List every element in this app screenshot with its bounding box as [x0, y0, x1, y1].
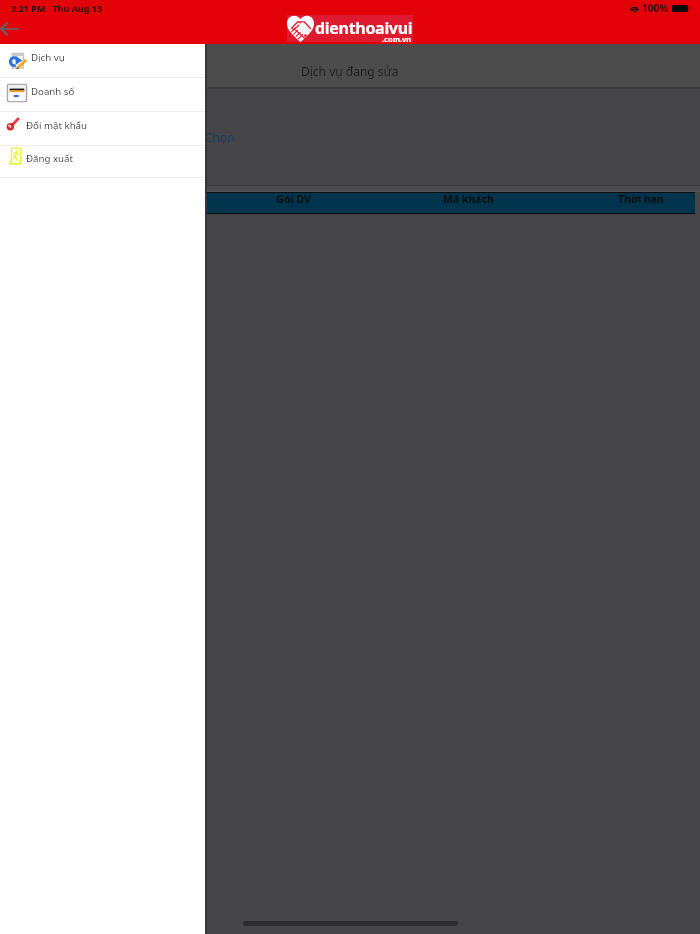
button[interactable]: Đổi mật khẩu — [0, 112, 205, 145]
staticText: Mã khách — [443, 192, 494, 206]
staticText: .com.vn — [382, 34, 412, 44]
staticText: Gói DV — [276, 192, 311, 206]
staticText: Đăng xuất — [26, 152, 74, 165]
staticText: 100% — [642, 1, 669, 15]
button[interactable]: Back — [0, 21, 19, 37]
staticText: Dịch vụ — [31, 51, 65, 64]
staticText: Dịch vụ đang sửa — [301, 63, 399, 79]
staticText: Thời hạn — [618, 192, 664, 206]
staticText: Đổi mật khẩu — [26, 119, 88, 132]
button[interactable]: Doanh số — [0, 78, 205, 111]
staticText: Doanh số — [31, 85, 75, 98]
staticText: 3:21 PM Thu Aug 13 — [11, 2, 103, 14]
button[interactable]: Chọn — [204, 129, 236, 145]
button[interactable]: Dịch vụ — [0, 44, 205, 77]
staticText: dienthoaivui — [315, 17, 413, 39]
button[interactable]: Đăng xuất — [0, 146, 205, 177]
staticText: Chọn — [205, 129, 235, 145]
